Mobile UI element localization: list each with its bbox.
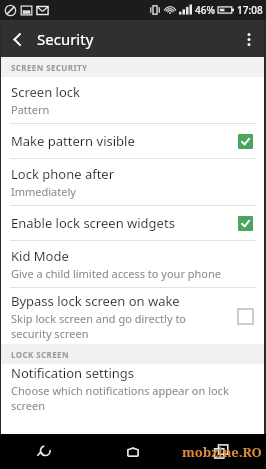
- staticText: Give a child limited access to your phon…: [11, 266, 222, 281]
- staticText: Bypass lock screen on wake: [11, 292, 180, 310]
- button[interactable]: Home: [88, 434, 177, 469]
- button[interactable]: Recent apps: [177, 434, 266, 469]
- staticText: Lock phone after: [11, 165, 115, 183]
- button[interactable]: Back: [0, 22, 34, 56]
- button[interactable]: Lock phone after: [0, 159, 266, 205]
- staticText: LOCK SCREEN: [11, 349, 69, 360]
- staticText: Screen lock: [11, 83, 80, 101]
- staticText: Make pattern visible: [11, 132, 135, 150]
- staticText: Immediately: [11, 184, 76, 199]
- button[interactable]: Notification settings: [0, 364, 266, 410]
- button[interactable]: Screen lock: [0, 77, 266, 123]
- staticText: SCREEN SECURITY: [11, 62, 88, 73]
- staticText: mobzine.RO: [182, 443, 262, 461]
- staticText: Enable lock screen widgets: [11, 214, 175, 232]
- staticText: Skip lock screen and go directly to secu…: [11, 311, 226, 341]
- button[interactable]: Unchecked: [232, 303, 258, 329]
- staticText: Choose which notifications appear on loc…: [11, 383, 258, 410]
- button[interactable]: Bypass lock screen on wake: [0, 288, 266, 344]
- button[interactable]: Kid Mode: [0, 241, 266, 287]
- button[interactable]: Enable lock screen widgets: [0, 206, 266, 240]
- staticText: Kid Mode: [11, 247, 69, 265]
- staticText: 46%: [195, 3, 215, 17]
- button[interactable]: Checked: [232, 210, 258, 236]
- button[interactable]: Make pattern visible: [0, 124, 266, 158]
- button[interactable]: More options: [232, 22, 266, 56]
- staticText: Notification settings: [11, 364, 135, 382]
- staticText: Security: [37, 29, 94, 49]
- button[interactable]: Back: [0, 434, 88, 469]
- staticText: 17:08: [237, 3, 263, 17]
- button[interactable]: Checked: [232, 128, 258, 154]
- staticText: Pattern: [11, 102, 50, 117]
